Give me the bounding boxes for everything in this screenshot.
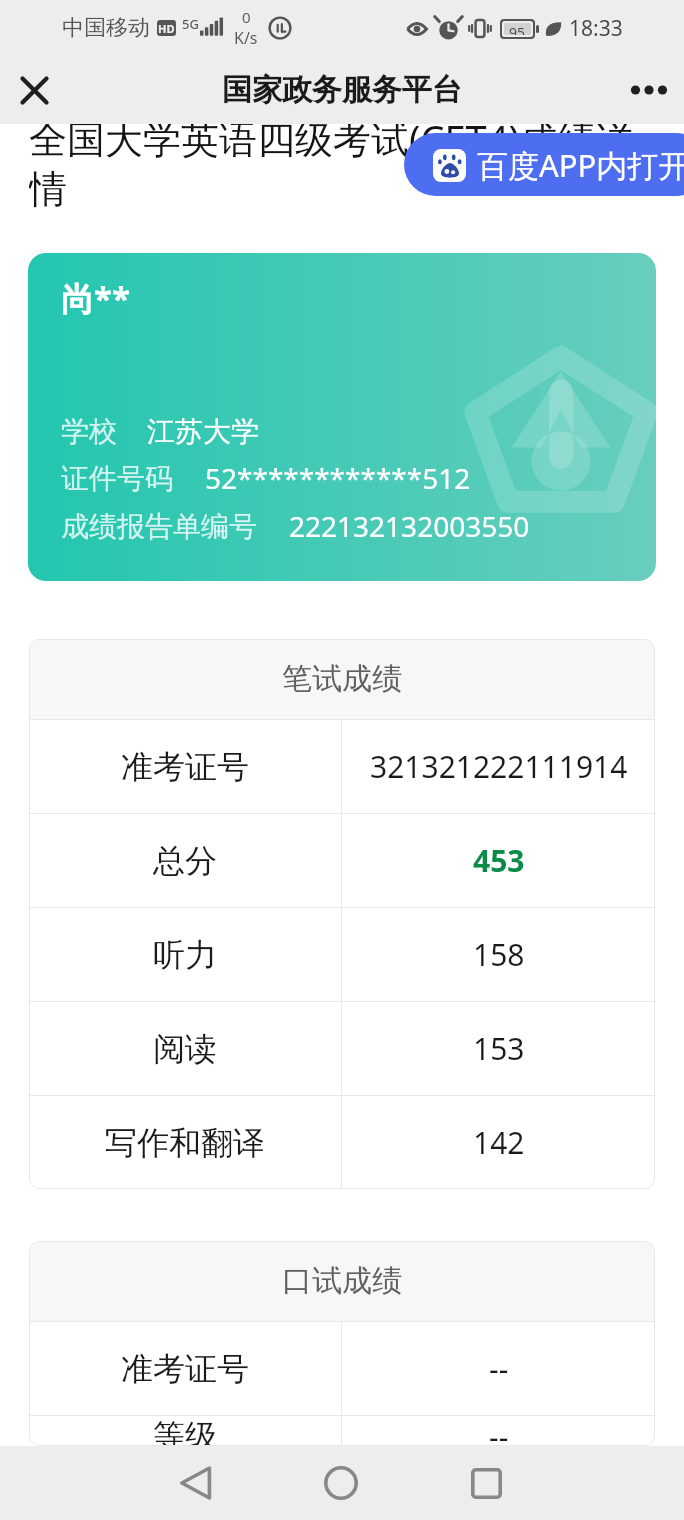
button[interactable]: More options bbox=[614, 56, 684, 124]
staticText: 总分 bbox=[153, 841, 217, 881]
button[interactable]: Home bbox=[296, 1446, 386, 1520]
staticText: K/s bbox=[234, 27, 258, 49]
staticText: 尚** bbox=[61, 276, 130, 321]
staticText: 全国大学英语四级考试(CET4)成绩详情 bbox=[29, 124, 654, 208]
staticText: 国家政务服务平台 bbox=[222, 71, 462, 109]
staticText: 52************512 bbox=[205, 459, 471, 497]
staticText: 阅读 bbox=[153, 1029, 217, 1069]
staticText: 口试成绩 bbox=[282, 1262, 402, 1300]
staticText: 成绩报告单编号 bbox=[61, 509, 257, 544]
staticText: 准考证号 bbox=[121, 747, 249, 787]
staticText: 写作和翻译 bbox=[105, 1123, 265, 1163]
staticText: 百度APP内打开 bbox=[477, 144, 684, 186]
staticText: 0 bbox=[242, 7, 251, 27]
staticText: 5G bbox=[182, 15, 199, 33]
staticText: 321321222111914 bbox=[370, 746, 628, 787]
staticText: 证件号码 bbox=[61, 461, 173, 496]
staticText: 153 bbox=[473, 1028, 525, 1069]
staticText: 18:33 bbox=[569, 14, 623, 43]
staticText: -- bbox=[489, 1348, 509, 1389]
staticText: 听力 bbox=[153, 935, 217, 975]
staticText: 学校 bbox=[61, 414, 117, 449]
staticText: 准考证号 bbox=[121, 1349, 249, 1389]
staticText: 等级 bbox=[153, 1416, 217, 1446]
staticText: 笔试成绩 bbox=[282, 660, 402, 698]
staticText: -- bbox=[489, 1416, 509, 1446]
button[interactable]: 尚** bbox=[28, 253, 656, 581]
staticText: 222132132003550 bbox=[289, 507, 530, 545]
staticText: 453 bbox=[473, 840, 525, 881]
button[interactable]: Back bbox=[151, 1446, 241, 1520]
staticText: 中国移动 bbox=[62, 14, 150, 42]
staticText: HD bbox=[158, 21, 175, 36]
staticText: 江苏大学 bbox=[147, 414, 259, 449]
staticText: 158 bbox=[473, 934, 525, 975]
staticText: 95 bbox=[509, 23, 526, 35]
staticText: 142 bbox=[473, 1122, 525, 1163]
button[interactable]: Recent apps bbox=[441, 1446, 531, 1520]
button[interactable]: 百度APP内打开 bbox=[404, 133, 684, 196]
button[interactable]: Close bbox=[0, 56, 68, 124]
